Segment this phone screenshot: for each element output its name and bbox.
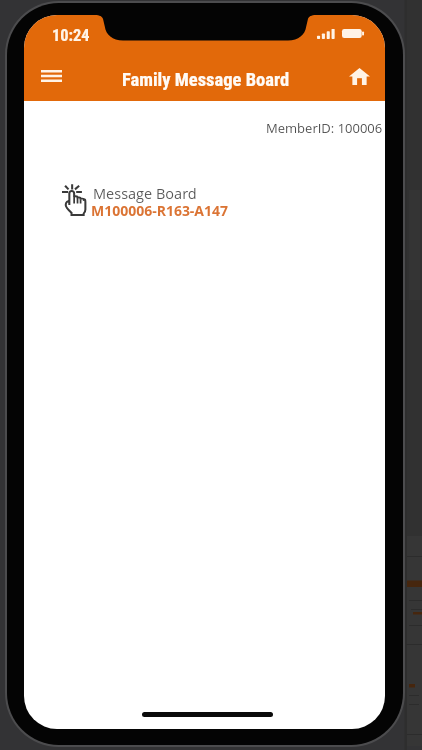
button[interactable]: Home — [338, 57, 381, 95]
staticText: M100006-R163-A147 — [91, 201, 229, 220]
button[interactable]: Message Board — [54, 177, 244, 219]
staticText: 10:24 — [52, 26, 90, 45]
staticText: MemberID: 100006 — [266, 119, 383, 137]
staticText: Message Board — [93, 184, 197, 204]
staticText: Family Message Board — [122, 69, 290, 91]
button[interactable]: Menu — [29, 57, 74, 95]
